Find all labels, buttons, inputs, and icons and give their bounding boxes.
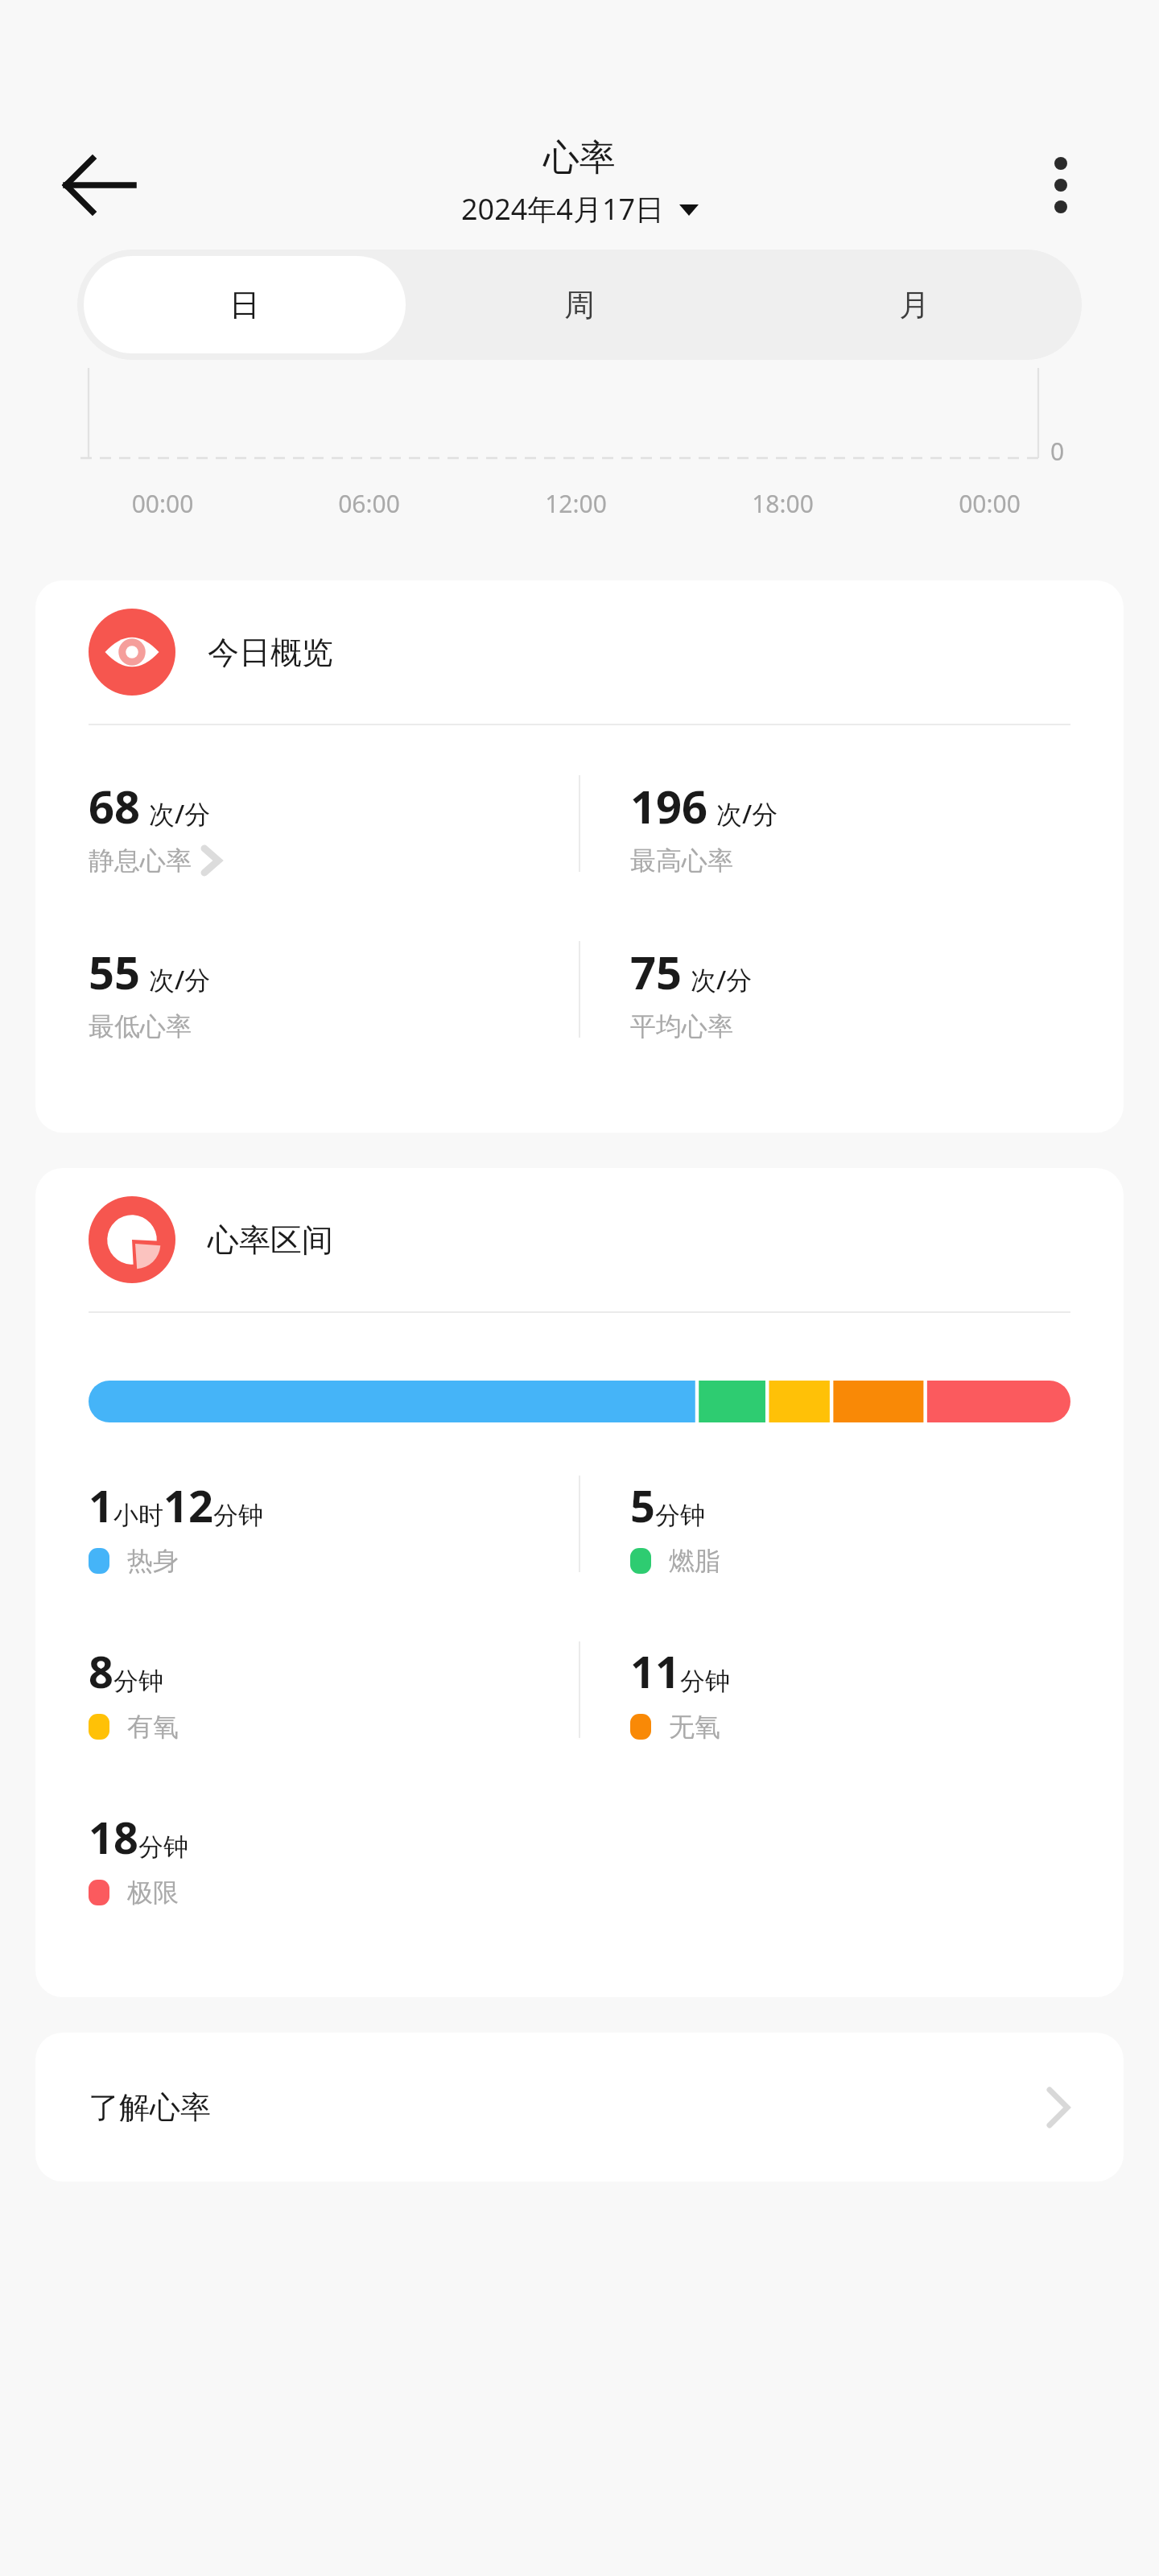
staticText: 分钟 xyxy=(213,1500,263,1531)
staticText: 00:00 xyxy=(886,487,1093,520)
button[interactable]: 55 xyxy=(89,941,579,1062)
button[interactable]: 日 xyxy=(84,256,406,353)
staticText: 分钟 xyxy=(655,1500,705,1531)
staticText: 06:00 xyxy=(266,487,472,520)
button[interactable]: 1 xyxy=(89,1476,579,1596)
staticText: 心率区间 xyxy=(208,1220,333,1260)
staticText: 小时 xyxy=(113,1500,163,1531)
staticText: 无氧 xyxy=(669,1711,720,1743)
staticText: 次/分 xyxy=(149,796,211,832)
staticText: 静息心率 xyxy=(89,844,192,877)
staticText: 分钟 xyxy=(113,1666,163,1697)
staticText: 分钟 xyxy=(138,1831,188,1863)
staticText: 5 xyxy=(630,1476,655,1535)
staticText: 平均心率 xyxy=(630,1010,733,1042)
staticText: 次/分 xyxy=(716,796,778,832)
staticText: 18 xyxy=(89,1807,138,1867)
staticText: 12 xyxy=(163,1476,213,1535)
staticText: 8 xyxy=(89,1641,113,1701)
staticText: 有氧 xyxy=(127,1711,179,1743)
button[interactable]: 心率区间 xyxy=(35,1168,1124,1311)
button[interactable]: 今日概览 xyxy=(35,580,1124,724)
staticText: 热身 xyxy=(127,1545,179,1577)
staticText: 最低心率 xyxy=(89,1010,192,1042)
button[interactable]: 18 xyxy=(89,1807,579,1928)
button[interactable]: 月 xyxy=(747,250,1082,360)
staticText: 75 xyxy=(630,941,683,1002)
staticText: 11 xyxy=(630,1641,680,1701)
button[interactable]: 5 xyxy=(580,1476,1070,1596)
staticText: 1 xyxy=(89,1476,113,1535)
staticText: 196 xyxy=(630,775,708,836)
staticText: 12:00 xyxy=(472,487,679,520)
staticText: 周 xyxy=(564,286,595,324)
staticText: 最高心率 xyxy=(630,844,733,877)
button[interactable]: 2024年4月17日 xyxy=(461,189,699,229)
button[interactable]: 8 xyxy=(89,1641,579,1762)
button[interactable]: 了解心率 xyxy=(35,2033,1124,2182)
staticText: 次/分 xyxy=(149,962,211,997)
button[interactable]: 周 xyxy=(412,250,747,360)
staticText: 燃脂 xyxy=(669,1545,720,1577)
button[interactable]: More options xyxy=(1021,145,1101,225)
button[interactable]: 11 xyxy=(580,1641,1070,1762)
staticText: 00:00 xyxy=(60,487,266,520)
staticText: 0 xyxy=(1050,435,1065,468)
button[interactable]: 68 xyxy=(89,775,579,896)
staticText: 今日概览 xyxy=(208,633,333,672)
staticText: 月 xyxy=(899,286,930,324)
staticText: 18:00 xyxy=(679,487,886,520)
staticText: 极限 xyxy=(127,1876,179,1909)
button[interactable]: Back xyxy=(58,143,142,227)
staticText: 68 xyxy=(89,775,141,836)
staticText: 日 xyxy=(229,286,260,324)
button[interactable]: 196 xyxy=(580,775,1070,896)
staticText: 次/分 xyxy=(691,962,753,997)
button[interactable]: 75 xyxy=(580,941,1070,1062)
staticText: 2024年4月17日 xyxy=(461,189,665,229)
staticText: 了解心率 xyxy=(89,2088,1048,2127)
staticText: 分钟 xyxy=(680,1666,730,1697)
staticText: 心率 xyxy=(543,135,616,181)
staticText: 55 xyxy=(89,941,141,1002)
